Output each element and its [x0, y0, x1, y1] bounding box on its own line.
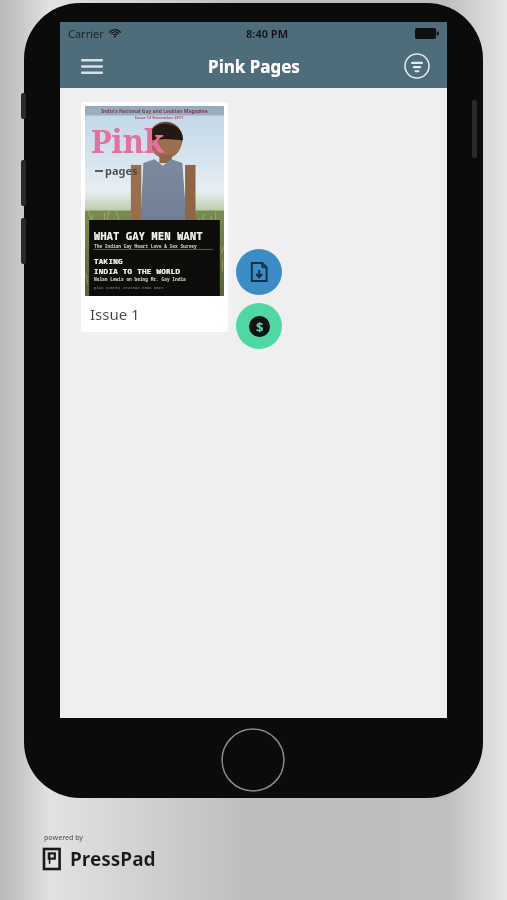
staticText: WHAT GAY MEN WANT: [94, 229, 203, 243]
button[interactable]: Download: [236, 249, 282, 295]
staticText: TAKING: [94, 256, 123, 266]
staticText: The Indian Gay Heart Love & Sex Survey: [94, 243, 197, 249]
staticText: Pink Pages: [208, 55, 300, 78]
staticText: India's National Gay and Lesbian Magazin…: [85, 108, 224, 115]
button[interactable]: Sort: [400, 49, 434, 83]
staticText: powered by: [44, 833, 84, 843]
staticText: Issue 12 November 2011: [135, 115, 224, 120]
button[interactable]: Home: [221, 728, 285, 792]
staticText: Carrier: [68, 26, 104, 41]
staticText: plus events reviews news more: [94, 285, 164, 290]
staticText: pages: [105, 163, 138, 178]
button[interactable]: Menu: [74, 48, 110, 84]
staticText: Issue 1: [90, 304, 140, 324]
button[interactable]: Buy: [236, 303, 282, 349]
staticText: PressPad: [70, 846, 156, 872]
staticText: $: [256, 318, 264, 336]
button[interactable]: India's National Gay and Lesbian Magazin…: [81, 102, 228, 332]
staticText: Pink: [91, 119, 165, 163]
staticText: INDIA TO THE WORLD: [94, 266, 181, 276]
staticText: 8:40 PM: [246, 26, 289, 41]
staticText: Nolan Lewis on being Mr. Gay India: [94, 276, 186, 282]
